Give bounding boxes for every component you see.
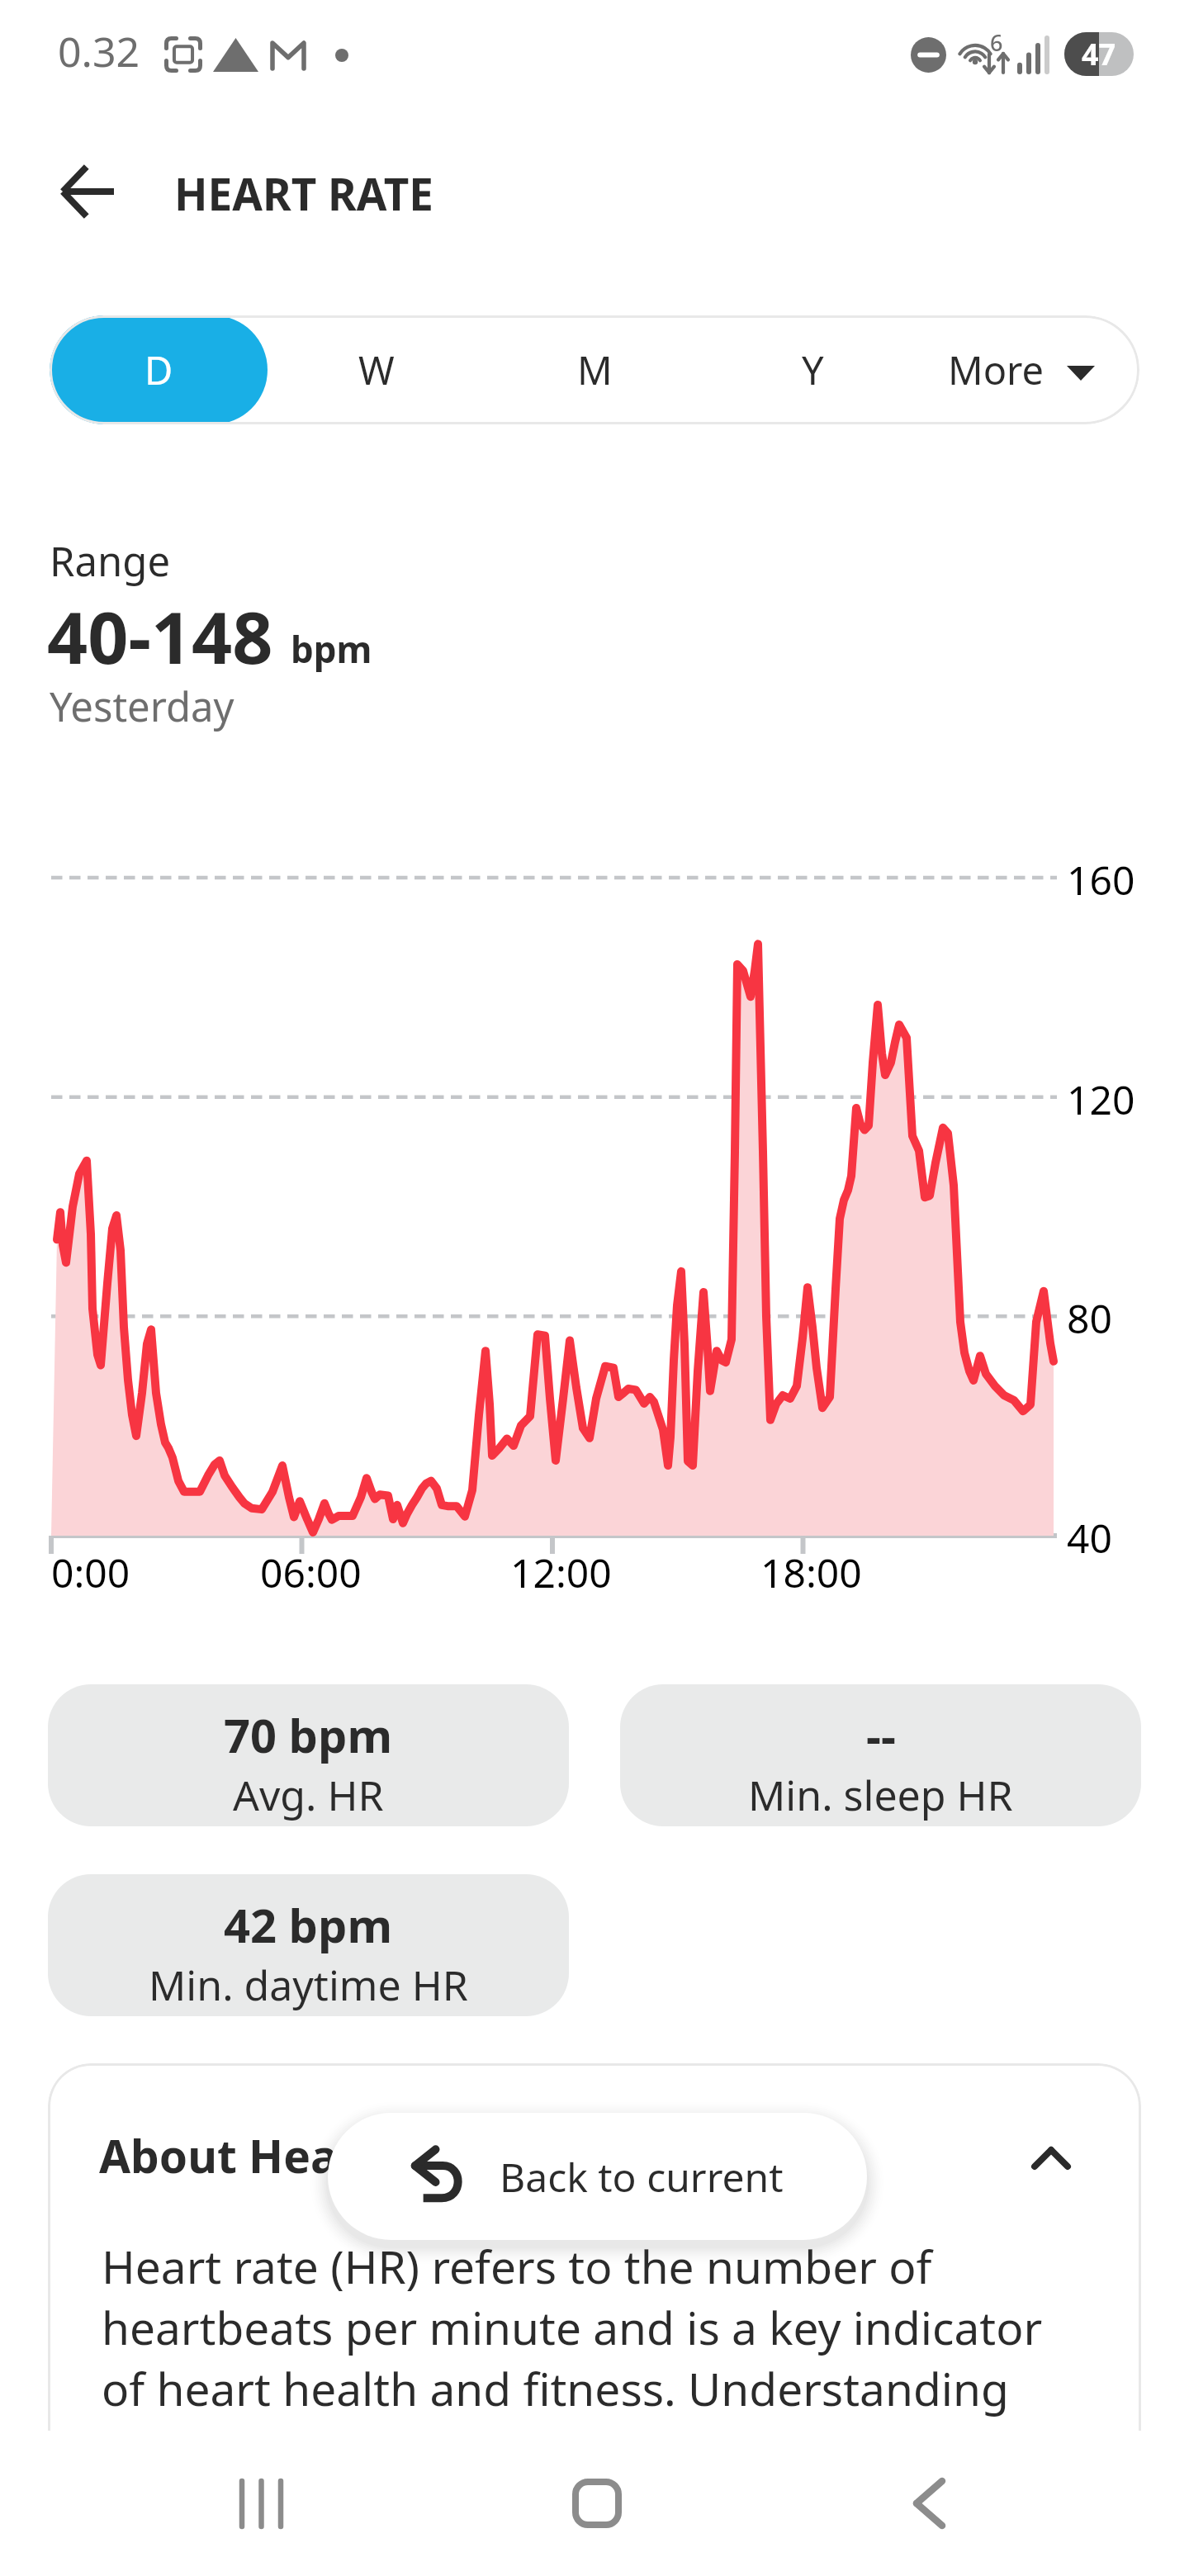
button[interactable]: Back [830, 2431, 1028, 2576]
staticText: 18:00 [760, 1546, 862, 1599]
staticText: W [358, 343, 395, 396]
staticText: Range [50, 533, 171, 589]
staticText: 6 [990, 27, 1003, 58]
staticText: 0:00 [51, 1546, 130, 1599]
button[interactable]: 42 bpm [48, 1874, 569, 2016]
staticText: 06:00 [260, 1546, 362, 1599]
button[interactable]: D [50, 315, 268, 424]
staticText: HEART RATE [174, 163, 434, 223]
staticText: 40 [1067, 1511, 1112, 1565]
button[interactable]: -- [620, 1684, 1141, 1826]
staticText: -- [866, 1703, 896, 1766]
button[interactable]: Home [498, 2431, 696, 2576]
button[interactable]: Y [703, 315, 921, 424]
button[interactable]: More [921, 315, 1139, 424]
staticText: About Heart rate [99, 2124, 483, 2186]
button[interactable]: 70 bpm [48, 1684, 569, 1826]
button[interactable]: About Heart rate [48, 2063, 1141, 2443]
staticText: Avg. HR [233, 1767, 384, 1823]
staticText: Back to current [500, 2150, 784, 2204]
staticText: 42 bpm [224, 1893, 393, 1956]
staticText: Y [802, 343, 824, 396]
staticText: Min. daytime HR [149, 1957, 468, 2013]
staticText: 160 [1067, 853, 1135, 907]
staticText: D [144, 343, 173, 396]
staticText: 0.32 [58, 23, 140, 79]
button[interactable]: Back to current [328, 2113, 867, 2240]
staticText: M [577, 343, 613, 396]
button[interactable]: Collapse [1003, 2121, 1099, 2195]
button[interactable]: Recents [165, 2431, 363, 2576]
staticText: Yesterday [50, 679, 234, 734]
button[interactable]: M [486, 315, 703, 424]
staticText: 40-148 [47, 588, 273, 684]
staticText: bpm [291, 624, 372, 674]
button[interactable]: W [268, 315, 486, 424]
staticText: Min. sleep HR [748, 1767, 1013, 1823]
staticText: More [948, 343, 1045, 396]
staticText: 12:00 [510, 1546, 612, 1599]
staticText: 120 [1067, 1073, 1135, 1126]
staticText: 47 [1082, 34, 1116, 74]
staticText: Heart rate (HR) refers to the number of … [102, 2235, 1043, 2419]
staticText: 80 [1067, 1291, 1112, 1345]
staticText: 70 bpm [224, 1703, 393, 1766]
button[interactable]: Back [38, 142, 137, 241]
